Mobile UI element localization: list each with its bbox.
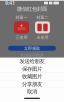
button[interactable]: 分享朋友 [0,80,64,88]
button[interactable]: 立即领取 [8,46,56,51]
staticText: 未使用 [36,35,48,40]
button[interactable]: 取消 [0,88,64,95]
staticText: 已使用 [15,35,27,40]
staticText: 发送给朋友 [19,58,44,65]
button[interactable]: 封面一 [14,15,29,40]
staticText: 9:41 [5,0,15,7]
staticText: 取消 [27,88,37,95]
staticText: 立即领取 [24,46,40,51]
staticText: 分享朋友 [22,81,42,87]
button[interactable]: 发送给朋友 [0,58,64,65]
button[interactable]: 封面二 [35,15,50,40]
staticText: 微信红包封面 [17,6,47,12]
button[interactable]: 保存图片 [0,65,64,72]
staticText: 长按保存图片 [20,53,44,58]
staticText: 封面二 [36,15,48,20]
button[interactable]: 收藏图片 [0,73,64,80]
staticText: 收藏图片 [22,73,42,80]
staticText: 保存图片 [22,66,42,72]
staticText: 封面一 [15,15,27,20]
